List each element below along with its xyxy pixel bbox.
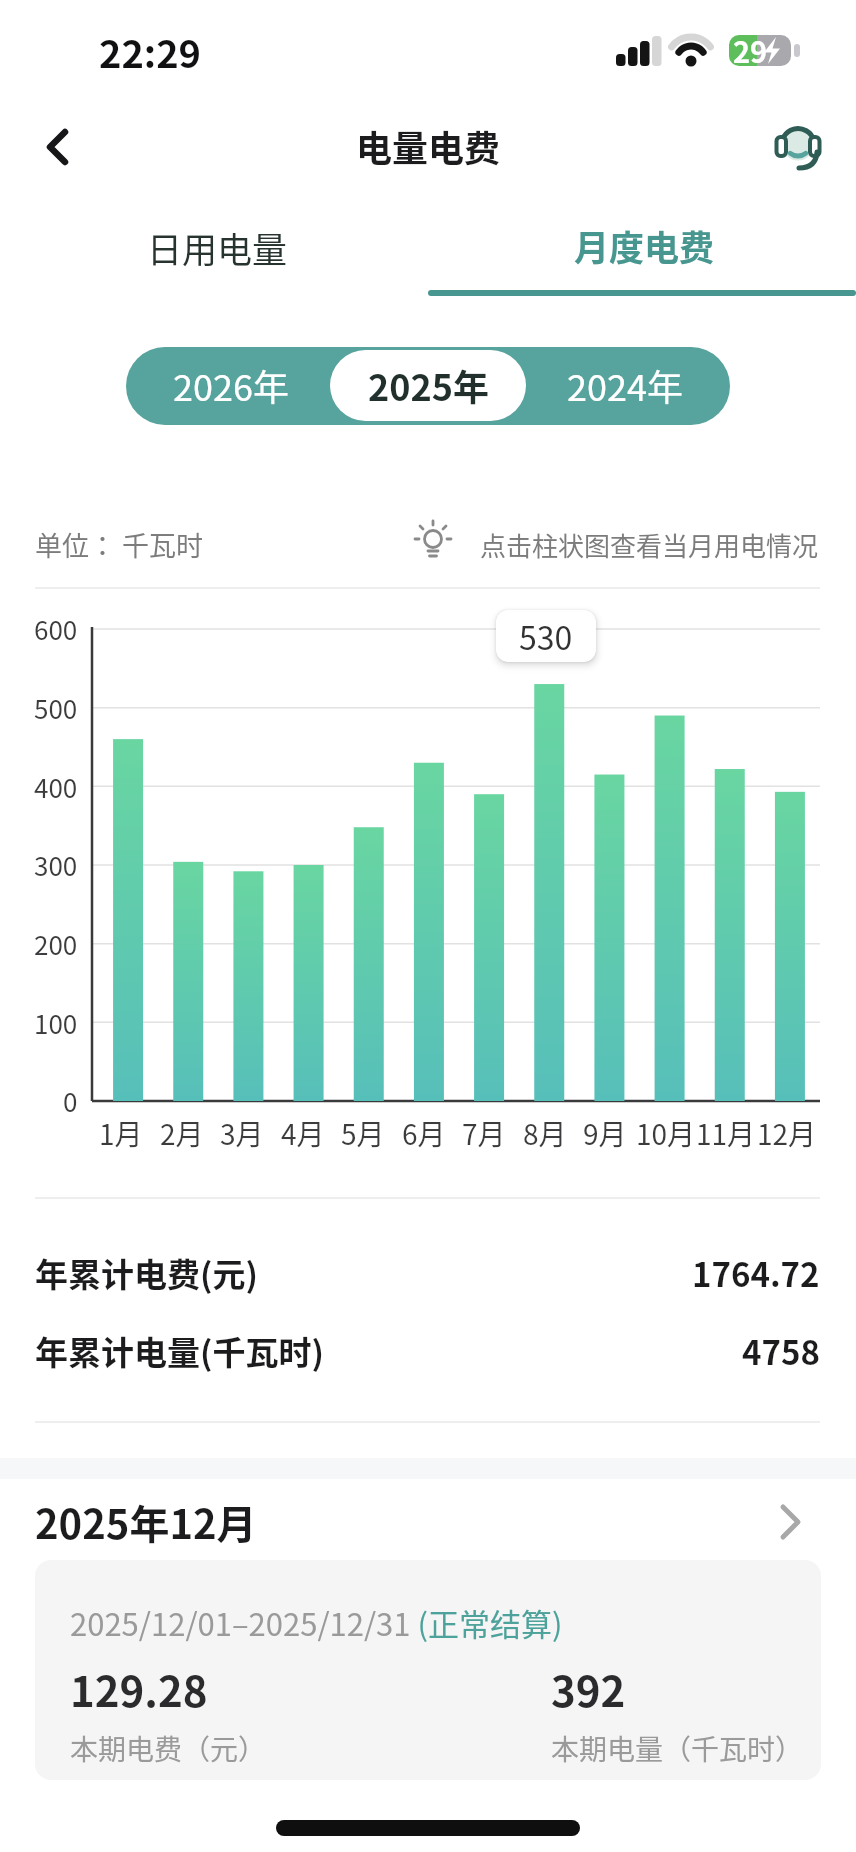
staticText: 2025年12月 <box>35 1493 257 1551</box>
staticText: 年累计电量(千瓦时) <box>35 1327 324 1375</box>
button[interactable] <box>126 347 327 425</box>
staticText: 4758 <box>742 1327 820 1375</box>
staticText: 5月 <box>341 1113 385 1154</box>
staticText: 7月 <box>462 1113 506 1154</box>
staticText: 3月 <box>220 1113 264 1154</box>
staticText: 392 <box>551 1658 626 1719</box>
button[interactable] <box>0 1490 856 1554</box>
button[interactable] <box>529 347 730 425</box>
staticText: 1月 <box>99 1113 143 1154</box>
staticText: 100 <box>34 1004 78 1042</box>
button[interactable]: 530 <box>496 610 596 662</box>
button[interactable] <box>330 350 526 421</box>
staticText: 2024年 <box>567 359 683 411</box>
staticText: 300 <box>34 846 78 884</box>
staticText: 6月 <box>402 1113 446 1154</box>
staticText: 2026年 <box>173 359 289 411</box>
staticText: 日用电量 <box>147 222 288 273</box>
staticText: 4月 <box>281 1113 325 1154</box>
button[interactable] <box>770 118 830 178</box>
staticText: 1764.72 <box>692 1249 820 1297</box>
staticText: 本期电量（千瓦时） <box>551 1728 804 1769</box>
staticText: 本期电费（元） <box>70 1728 267 1769</box>
button[interactable] <box>428 200 856 295</box>
button[interactable] <box>35 1560 821 1780</box>
staticText: 单位： 千瓦时 <box>35 525 204 564</box>
staticText: 11月 <box>696 1113 756 1154</box>
staticText: 8月 <box>523 1113 567 1154</box>
staticText: 200 <box>34 925 78 963</box>
staticText: 500 <box>34 689 78 727</box>
button[interactable] <box>0 200 428 295</box>
staticText: 0 <box>63 1082 78 1120</box>
staticText: 22:29 <box>99 24 202 79</box>
staticText: 9月 <box>583 1113 627 1154</box>
staticText: 129.28 <box>70 1658 208 1719</box>
staticText: 400 <box>34 768 78 806</box>
staticText: 2025年 <box>368 359 489 411</box>
staticText: 电量电费 <box>356 120 501 172</box>
staticText: 12月 <box>757 1113 817 1154</box>
staticText: 530 <box>519 613 573 659</box>
staticText: 点击柱状图查看当月用电情况 <box>480 526 819 564</box>
staticText: 年累计电费(元) <box>35 1249 258 1297</box>
staticText: 2025/12/01–2025/12/31 (正常结算) <box>70 1600 563 1645</box>
button[interactable] <box>30 120 85 175</box>
staticText: 月度电费 <box>574 220 715 271</box>
staticText: 2月 <box>160 1113 204 1154</box>
staticText: 600 <box>34 610 78 648</box>
staticText: 10月 <box>636 1113 696 1154</box>
staticText: 29 <box>733 29 768 71</box>
